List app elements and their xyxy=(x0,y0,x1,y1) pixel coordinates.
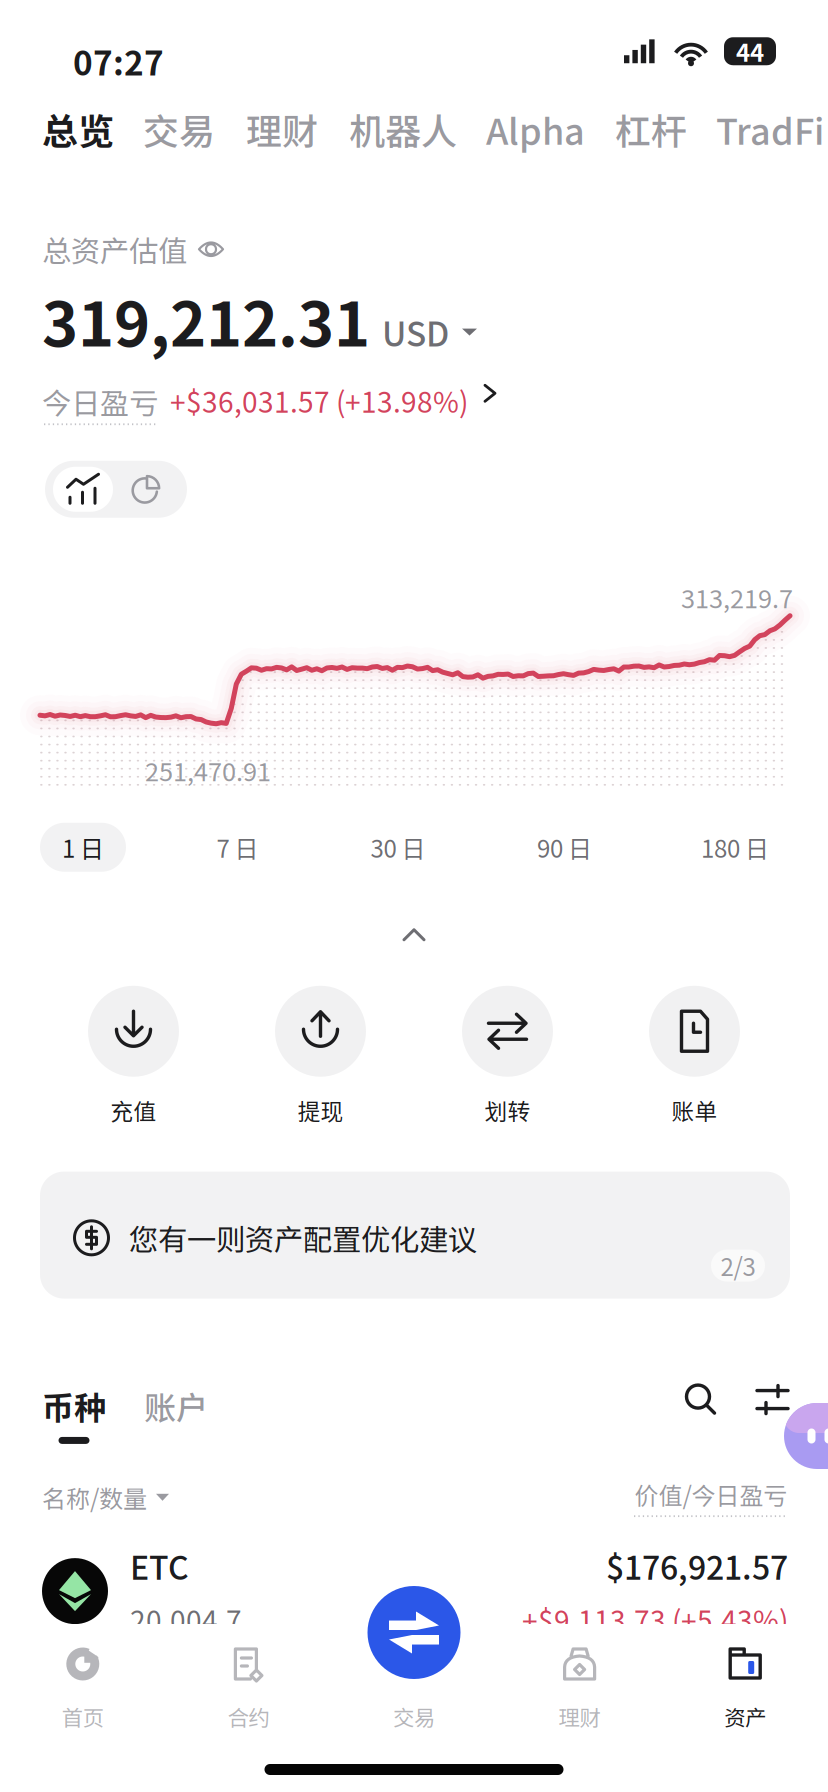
staticText: 理财 xyxy=(246,103,318,155)
button[interactable]: 资产 xyxy=(662,1647,828,1732)
button[interactable]: 1 日 xyxy=(40,823,126,872)
button[interactable]: 币种 xyxy=(42,1383,106,1444)
button[interactable]: ETC xyxy=(0,1543,828,1640)
staticText: 划转 xyxy=(484,1094,530,1127)
staticText: 44 xyxy=(736,34,764,69)
button[interactable]: 30 日 xyxy=(349,823,447,872)
button[interactable]: Assistant xyxy=(784,1403,828,1469)
button[interactable]: 90 日 xyxy=(515,823,613,872)
staticText: 杠杆 xyxy=(615,103,687,155)
staticText: 机器人 xyxy=(349,103,457,155)
button[interactable]: 机器人 xyxy=(349,103,486,155)
button[interactable]: 理财 xyxy=(497,1647,662,1732)
staticText: 07:27 xyxy=(73,37,164,85)
staticText: 319,212.31 xyxy=(42,275,370,364)
button[interactable]: 交易 xyxy=(143,103,246,155)
button[interactable]: Pie chart view xyxy=(113,467,179,512)
staticText: 251,470.91 xyxy=(145,752,271,788)
staticText: 20,004.7 xyxy=(130,1599,242,1639)
staticText: Alpha xyxy=(486,103,585,155)
staticText: 名称/数量 xyxy=(42,1480,147,1515)
staticText: 1 日 xyxy=(62,830,104,865)
button[interactable]: 总览 xyxy=(42,103,143,155)
staticText: 充值 xyxy=(110,1094,156,1127)
button[interactable]: Filter xyxy=(716,1383,788,1414)
staticText: 180 日 xyxy=(701,830,769,865)
staticText: 提现 xyxy=(297,1094,343,1127)
button[interactable]: Trade xyxy=(367,1586,460,1679)
staticText: USD xyxy=(382,308,449,356)
staticText: 账单 xyxy=(671,1094,717,1127)
staticText: 总资产估值 xyxy=(42,228,187,270)
button[interactable]: Toggle balance visibility xyxy=(42,228,224,270)
staticText: 2/3 xyxy=(720,1248,755,1283)
staticText: 交易 xyxy=(143,103,215,155)
button[interactable]: 180 日 xyxy=(682,823,788,872)
staticText: 交易 xyxy=(393,1701,435,1732)
button[interactable]: 您有一则资产配置优化建议 xyxy=(0,1172,790,1299)
button[interactable]: Line chart view xyxy=(53,467,113,512)
staticText: 账户 xyxy=(144,1383,208,1429)
button[interactable]: 名称/数量 xyxy=(42,1480,169,1515)
staticText: 资产 xyxy=(724,1701,766,1732)
staticText: 今日盈亏 xyxy=(42,380,158,423)
button[interactable]: Alpha xyxy=(486,103,615,155)
button[interactable]: 交易 xyxy=(331,1647,497,1732)
button[interactable]: Search xyxy=(685,1383,716,1415)
button[interactable]: 提现 xyxy=(227,986,414,1127)
staticText: ETC xyxy=(130,1543,189,1589)
staticText: 90 日 xyxy=(537,830,592,865)
button[interactable]: 7 日 xyxy=(194,823,280,872)
button[interactable]: 杠杆 xyxy=(615,103,716,155)
button[interactable]: 充值 xyxy=(40,986,227,1127)
button[interactable]: 合约 xyxy=(166,1647,331,1732)
button[interactable]: 账单 xyxy=(601,986,788,1127)
staticText: +$9,113.73 (+5.43%) xyxy=(522,1599,788,1639)
staticText: 合约 xyxy=(227,1701,269,1732)
button[interactable]: 首页 xyxy=(0,1647,166,1732)
staticText: 您有一则资产配置优化建议 xyxy=(129,1217,477,1259)
button[interactable]: Today's profit and loss xyxy=(42,380,828,426)
staticText: 313,219.7 xyxy=(681,579,793,615)
staticText: 币种 xyxy=(42,1383,106,1429)
button[interactable]: 账户 xyxy=(106,1383,208,1429)
staticText: 30 日 xyxy=(370,830,425,865)
button[interactable]: 划转 xyxy=(414,986,601,1127)
button[interactable]: Collapse xyxy=(0,908,828,962)
staticText: $176,921.57 xyxy=(606,1543,788,1589)
staticText: 总览 xyxy=(42,103,114,155)
staticText: 首页 xyxy=(62,1701,104,1732)
staticText: TradFi xyxy=(716,103,824,155)
button[interactable]: TradFi xyxy=(716,103,824,155)
staticText: 理财 xyxy=(559,1701,601,1732)
staticText: 7 日 xyxy=(216,830,258,865)
button[interactable]: 理财 xyxy=(246,103,349,155)
staticText: +$36,031.57 (+13.98%) xyxy=(170,380,468,421)
staticText: 价值/今日盈亏 xyxy=(634,1477,787,1512)
button[interactable]: 价值/今日盈亏 xyxy=(634,1477,788,1518)
button[interactable]: Change currency xyxy=(370,308,477,356)
